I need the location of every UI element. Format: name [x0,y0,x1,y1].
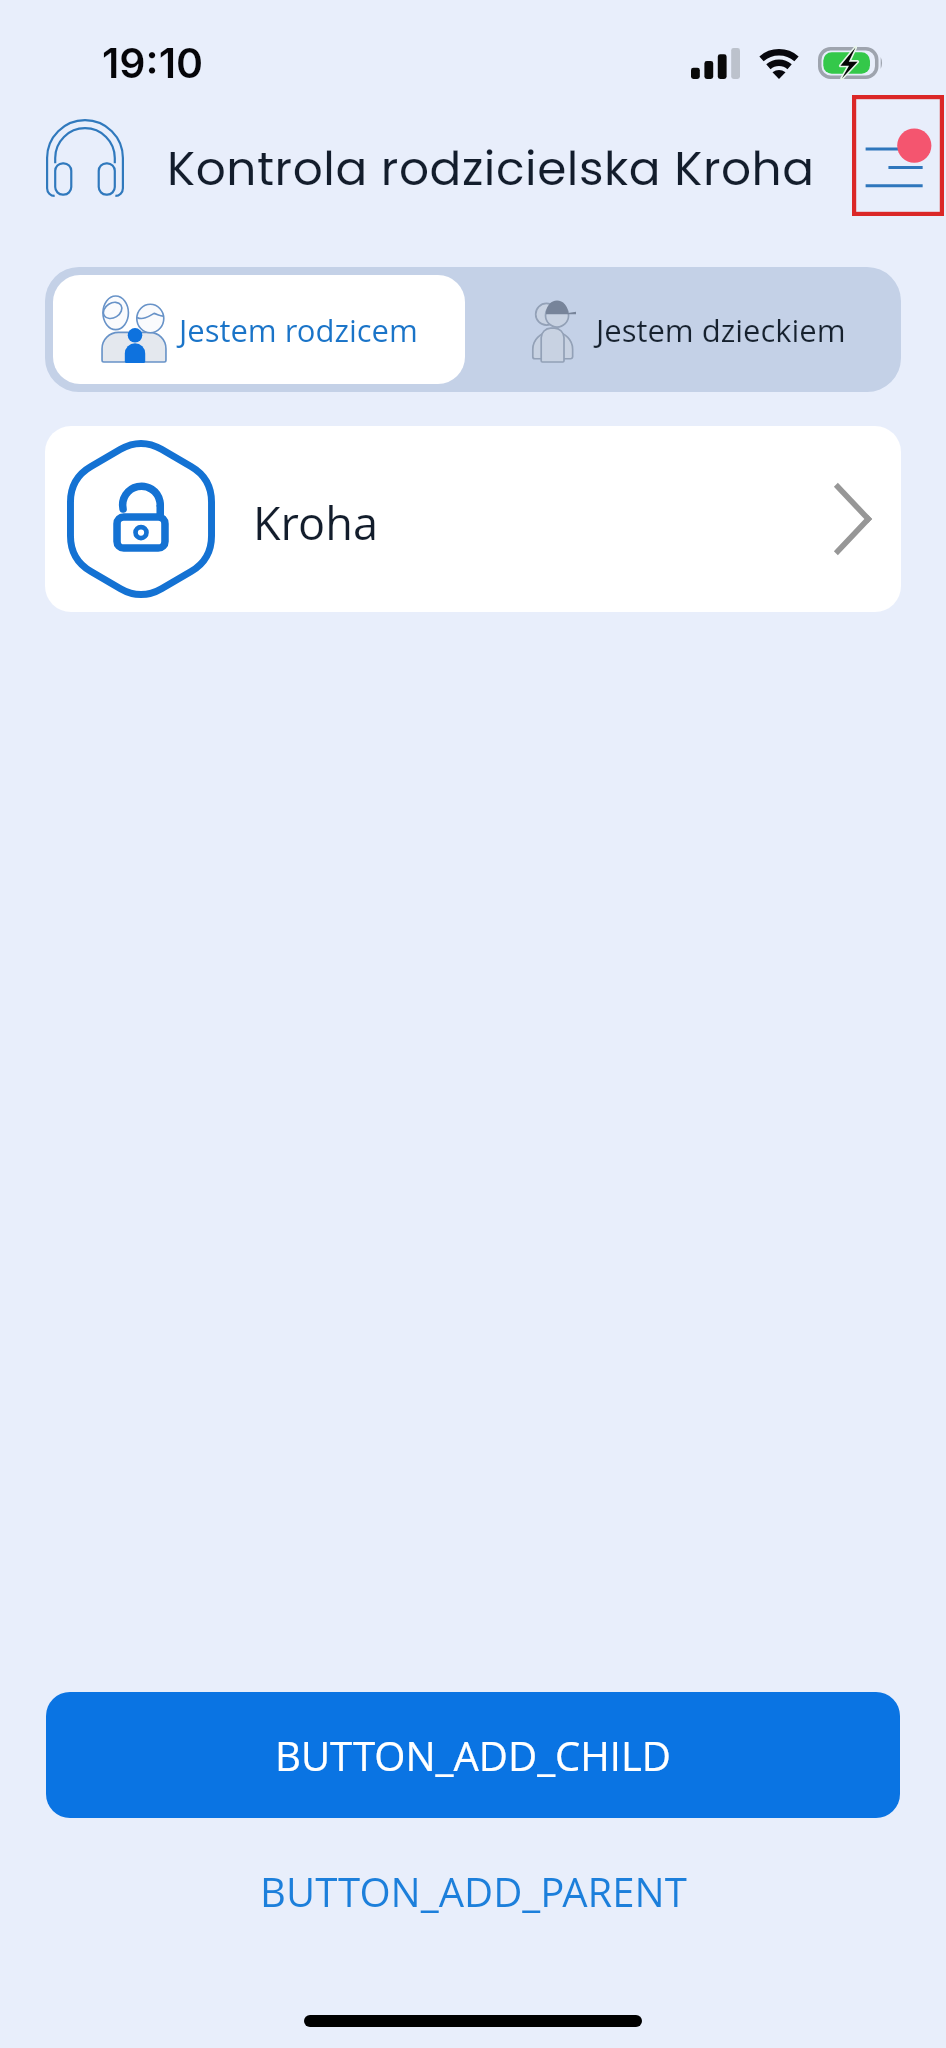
button[interactable]: Kroha [45,426,901,612]
button[interactable]: Menu [852,95,944,216]
button[interactable]: Jestem rodzicem [53,275,465,384]
staticText: 19:10 [102,38,204,88]
button[interactable]: BUTTON_ADD_PARENT [0,1856,946,1926]
button[interactable]: BUTTON_ADD_CHILD [46,1692,900,1818]
staticText: BUTTON_ADD_PARENT [260,1864,687,1918]
staticText: Kontrola rodzicielska Kroha [167,136,815,202]
button[interactable]: Jestem dzieckiem [473,267,901,392]
staticText: Jestem dzieckiem [596,309,846,351]
staticText: Jestem rodzicem [179,309,418,351]
staticText: BUTTON_ADD_CHILD [275,1728,671,1782]
staticText: Kroha [253,492,378,553]
